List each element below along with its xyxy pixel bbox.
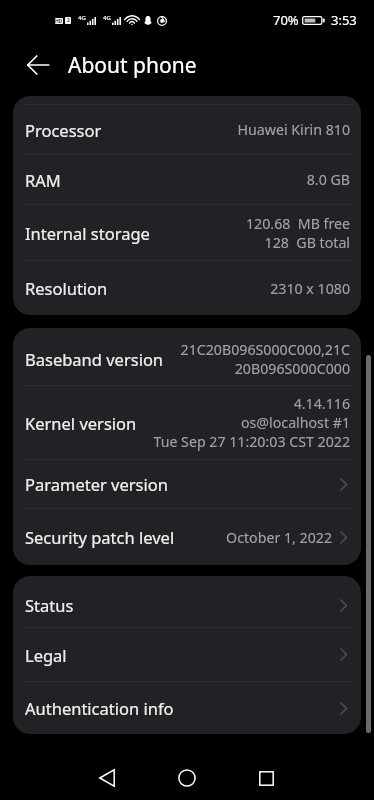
- button[interactable]: Processor: [13, 105, 361, 154]
- button[interactable]: Authentication info: [13, 682, 361, 734]
- button[interactable]: Security patch level: [13, 509, 361, 565]
- staticText: Legal: [25, 644, 67, 666]
- button[interactable]: Recents: [244, 756, 289, 800]
- staticText: 2: [67, 17, 70, 24]
- button[interactable]: Status: [13, 583, 361, 627]
- staticText: Status: [25, 594, 74, 616]
- button[interactable]: Legal: [13, 628, 361, 681]
- button[interactable]: Back: [14, 42, 60, 88]
- staticText: 4G: [78, 14, 86, 22]
- button[interactable]: Baseband version: [13, 332, 361, 385]
- staticText: Parameter version: [25, 473, 168, 495]
- button[interactable]: Home: [164, 756, 209, 800]
- staticText: 21C20B096S000C000,21C 20B096S000C000: [180, 340, 350, 378]
- button[interactable]: Resolution: [13, 261, 361, 315]
- staticText: 4G: [103, 14, 111, 22]
- staticText: Processor: [25, 119, 102, 141]
- staticText: HD: [55, 18, 63, 24]
- other: Open: [341, 478, 350, 491]
- staticText: Huawei Kirin 810: [237, 120, 350, 139]
- staticText: 70%: [273, 11, 299, 29]
- staticText: 2310 x 1080: [270, 279, 350, 298]
- staticText: 3:53: [331, 11, 357, 29]
- staticText: Security patch level: [25, 526, 175, 548]
- staticText: October 1, 2022: [226, 528, 332, 547]
- button[interactable]: Parameter version: [13, 460, 361, 508]
- staticText: 4.14.116 os@localhost #1 Tue Sep 27 11:2…: [153, 394, 350, 451]
- staticText: 120.68 MB free 128 GB total: [246, 214, 350, 252]
- staticText: 8.0 GB: [306, 170, 350, 189]
- staticText: Baseband version: [25, 348, 164, 370]
- staticText: Resolution: [25, 277, 108, 299]
- button[interactable]: RAM: [13, 155, 361, 204]
- other: Open: [341, 648, 350, 661]
- staticText: About phone: [68, 51, 197, 80]
- other: Open: [341, 702, 350, 715]
- button[interactable]: Kernel version: [13, 386, 361, 459]
- other: Open: [341, 599, 350, 612]
- staticText: Authentication info: [25, 697, 174, 719]
- button[interactable]: Back: [84, 756, 129, 800]
- staticText: Internal storage: [25, 222, 150, 244]
- other: Open: [341, 531, 350, 544]
- staticText: Kernel version: [25, 412, 137, 434]
- staticText: RAM: [25, 169, 61, 191]
- button[interactable]: Internal storage: [13, 205, 361, 260]
